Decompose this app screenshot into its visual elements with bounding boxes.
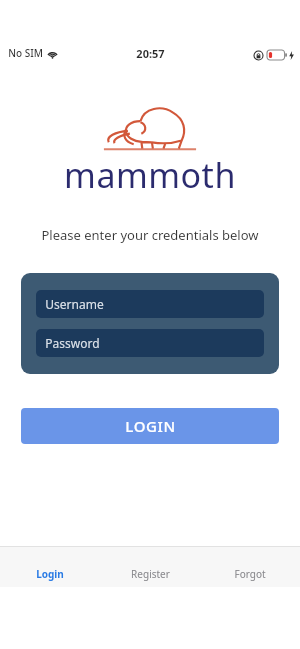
button[interactable]: Register (100, 547, 200, 587)
staticText: Username (45, 296, 104, 312)
button[interactable]: LOGIN (21, 408, 279, 444)
staticText: LOGIN (125, 416, 176, 436)
other: Lock (254, 51, 263, 60)
staticText: No SIM (8, 46, 43, 60)
button[interactable]: Password (36, 329, 264, 357)
staticText: Register (131, 567, 170, 581)
other: Battery low (267, 50, 287, 60)
staticText: Forgot (234, 567, 266, 581)
staticText: mammoth (64, 152, 236, 198)
button[interactable]: Forgot (200, 547, 300, 587)
staticText: Login (36, 567, 64, 581)
staticText: Password (45, 335, 100, 351)
other: Wi-Fi (47, 48, 58, 59)
other: Mammoth logo (102, 102, 198, 150)
button[interactable]: Login (0, 547, 100, 587)
other: Charging (289, 51, 294, 60)
staticText: 20:57 (136, 46, 165, 61)
staticText: Please enter your credentials below (41, 226, 259, 244)
button[interactable]: Username (36, 290, 264, 318)
